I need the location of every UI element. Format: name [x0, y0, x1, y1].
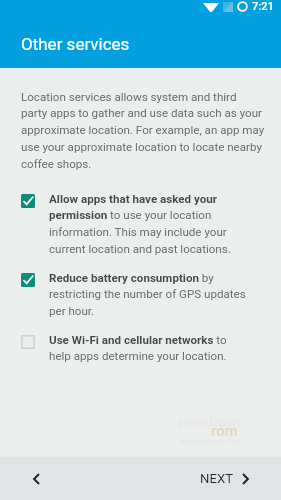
- staticText: Allow apps that have asked your permissi…: [49, 192, 248, 256]
- button[interactable]: Back: [18, 461, 54, 497]
- staticText: Location services allows system and thir…: [21, 90, 265, 171]
- staticText: needrom: [179, 413, 241, 431]
- staticText: Other services: [21, 34, 130, 54]
- staticText: Use Wi-Fi and cellular networks to help …: [49, 333, 248, 363]
- staticText: 7:21: [252, 0, 274, 13]
- staticText: Reduce battery consumption by restrictin…: [49, 271, 248, 318]
- staticText: rom: [211, 422, 238, 440]
- button[interactable]: Reduce battery consumption by restrictin…: [0, 271, 281, 318]
- staticText: NEXT: [200, 471, 234, 486]
- other: Wi-Fi: [203, 2, 219, 12]
- button[interactable]: Use Wi-Fi and cellular networks to help …: [0, 333, 281, 363]
- button[interactable]: Allow apps that have asked your permissi…: [0, 192, 281, 256]
- button[interactable]: NEXT: [182, 457, 281, 500]
